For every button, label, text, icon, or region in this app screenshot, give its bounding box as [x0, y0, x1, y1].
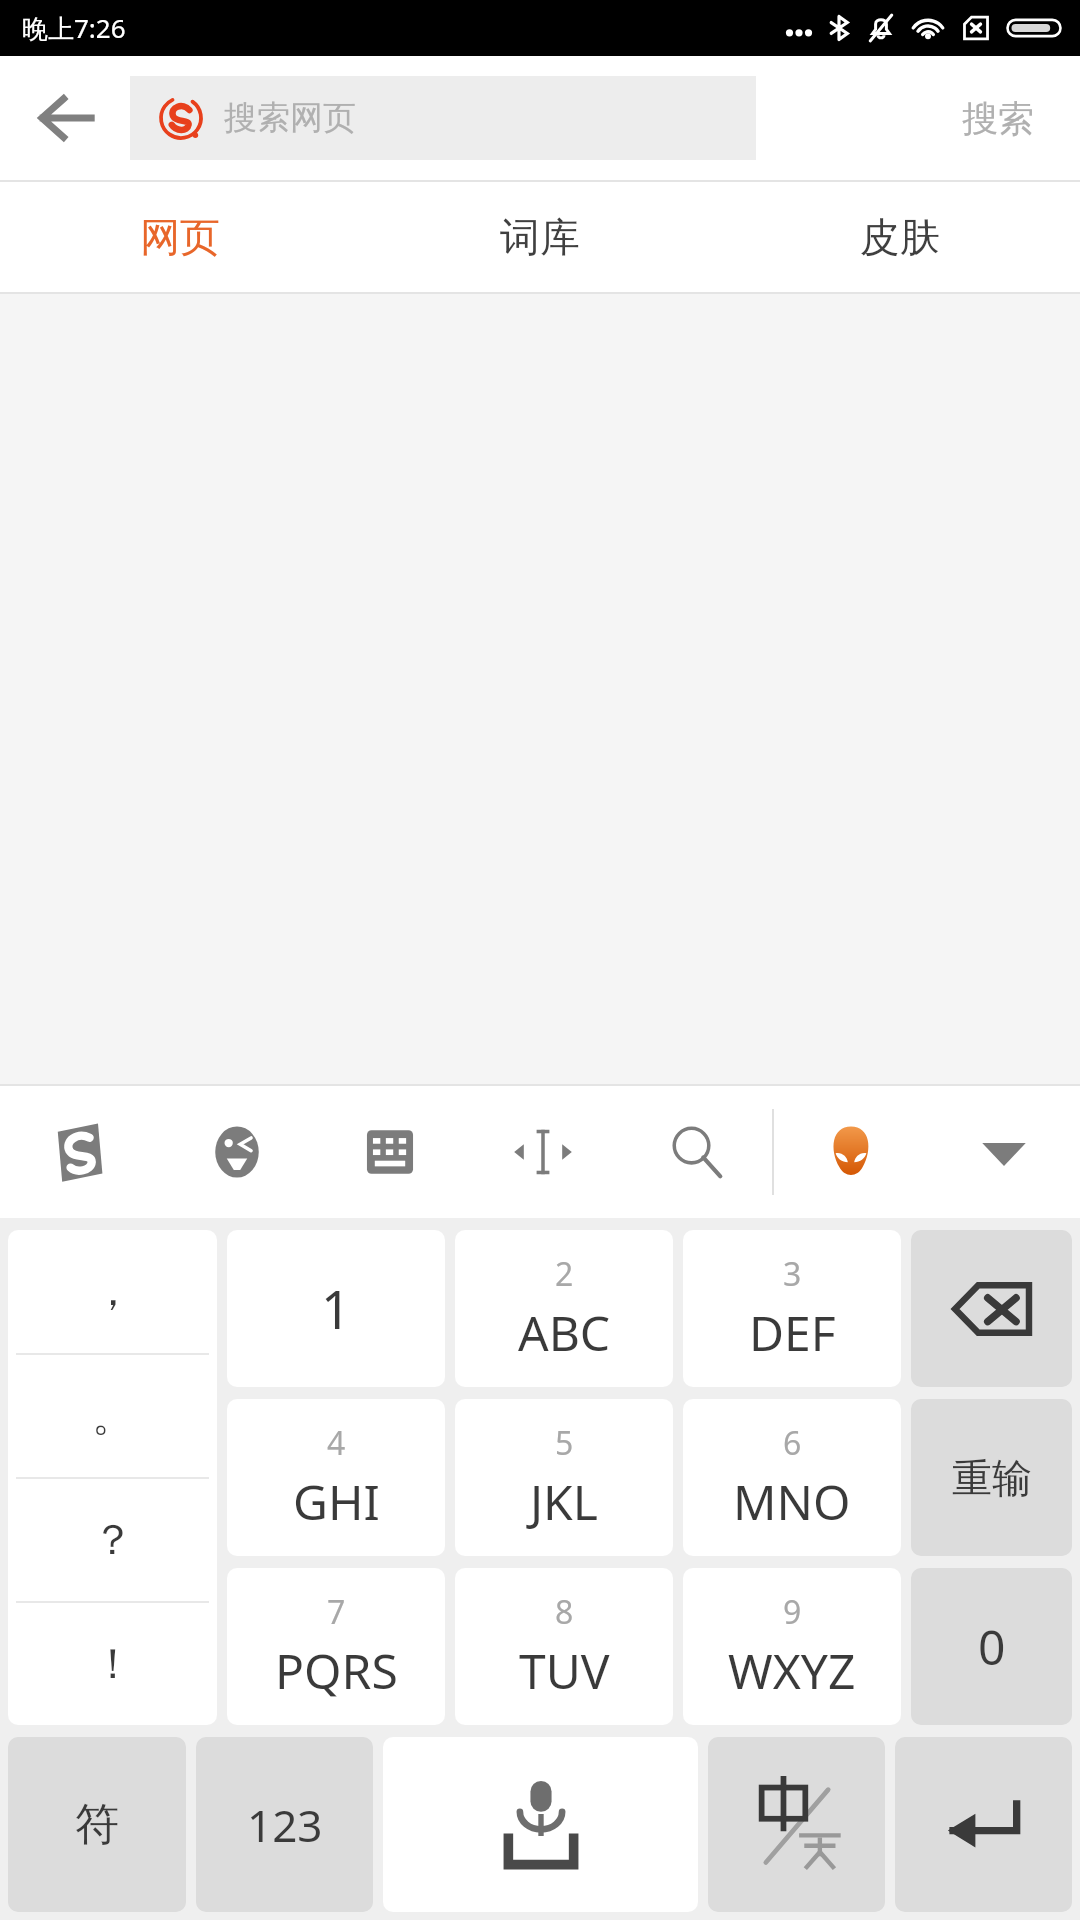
staticText: 0: [978, 1614, 1006, 1679]
button[interactable]: Delete: [911, 1230, 1072, 1387]
staticText: TUV: [519, 1638, 610, 1703]
button[interactable]: Search: [619, 1086, 772, 1218]
button[interactable]: ，: [8, 1230, 217, 1353]
staticText: GHI: [293, 1469, 380, 1534]
staticText: 8: [555, 1590, 574, 1634]
staticText: ，: [92, 1265, 134, 1318]
button[interactable]: [708, 1737, 885, 1912]
staticText: 2: [555, 1252, 574, 1296]
staticText: JKL: [530, 1469, 598, 1534]
button[interactable]: Space, voice input: [383, 1737, 698, 1912]
staticText: 搜索: [962, 96, 1034, 141]
button[interactable]: Collapse keyboard: [927, 1086, 1080, 1218]
staticText: 123: [247, 1795, 323, 1855]
staticText: 9: [783, 1590, 802, 1634]
button[interactable]: 皮肤: [720, 182, 1080, 292]
button[interactable]: 3: [683, 1230, 901, 1387]
staticText: 词库: [500, 212, 580, 262]
button[interactable]: 2: [455, 1230, 673, 1387]
staticText: PQRS: [275, 1638, 398, 1703]
button[interactable]: Assistant: [774, 1086, 927, 1218]
staticText: MNO: [733, 1469, 851, 1534]
button[interactable]: 。: [8, 1355, 217, 1477]
staticText: ABC: [518, 1300, 611, 1365]
button[interactable]: 8: [455, 1568, 673, 1725]
button[interactable]: Keyboard layout: [313, 1086, 466, 1218]
button[interactable]: 重输: [911, 1399, 1072, 1556]
staticText: 搜索网页: [224, 97, 356, 139]
staticText: 4: [327, 1421, 346, 1465]
button[interactable]: 网页: [0, 182, 360, 292]
button[interactable]: 0: [911, 1568, 1072, 1725]
staticText: 皮肤: [860, 212, 940, 262]
staticText: 网页: [140, 212, 220, 262]
button[interactable]: 1: [227, 1230, 445, 1387]
staticText: 符: [75, 1797, 119, 1852]
staticText: 6: [783, 1421, 802, 1465]
button[interactable]: ！: [8, 1603, 217, 1725]
button[interactable]: Enter: [895, 1737, 1072, 1912]
staticText: 晚上7:26: [22, 10, 126, 46]
staticText: 重输: [952, 1453, 1032, 1503]
button[interactable]: Emoji: [160, 1086, 313, 1218]
button[interactable]: Sogou input: [0, 1086, 160, 1218]
staticText: 5: [555, 1421, 574, 1465]
button[interactable]: Cursor move: [466, 1086, 619, 1218]
button[interactable]: 符: [8, 1737, 186, 1912]
button[interactable]: 6: [683, 1399, 901, 1556]
button[interactable]: 搜索网页: [130, 76, 756, 160]
button[interactable]: 123: [196, 1737, 373, 1912]
button[interactable]: 词库: [360, 182, 720, 292]
staticText: 3: [783, 1252, 802, 1296]
staticText: DEF: [749, 1300, 836, 1365]
staticText: ？: [92, 1514, 134, 1567]
staticText: ！: [92, 1638, 134, 1691]
button[interactable]: ？: [8, 1479, 217, 1601]
button[interactable]: 5: [455, 1399, 673, 1556]
button[interactable]: 4: [227, 1399, 445, 1556]
button[interactable]: 7: [227, 1568, 445, 1725]
button[interactable]: Back: [0, 56, 132, 180]
staticText: 7: [327, 1590, 346, 1634]
staticText: WXYZ: [728, 1638, 856, 1703]
button[interactable]: 9: [683, 1568, 901, 1725]
staticText: 。: [92, 1390, 134, 1443]
staticText: 1: [321, 1273, 351, 1344]
button[interactable]: 搜索: [916, 56, 1080, 180]
